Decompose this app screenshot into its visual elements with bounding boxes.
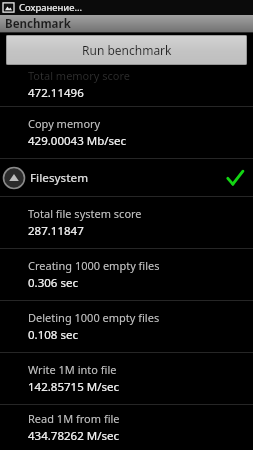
button[interactable]: Deleting 1000 empty files <box>0 301 253 352</box>
staticText: Write 1M into file <box>28 362 117 377</box>
staticText: Benchmark <box>5 16 71 32</box>
staticText: Deleting 1000 empty files <box>28 310 160 325</box>
button[interactable]: Collapse Filesystem group <box>0 159 253 196</box>
button[interactable]: Copy memory <box>0 107 253 158</box>
other: Collapse Filesystem group <box>2 166 26 190</box>
button[interactable]: Write 1M into file <box>0 353 253 404</box>
button[interactable]: Creating 1000 empty files <box>0 249 253 300</box>
other: Completed <box>226 169 244 187</box>
staticText: Total memory score <box>28 68 131 83</box>
staticText: Read 1M from file <box>28 411 120 426</box>
button[interactable]: Run benchmark <box>6 35 247 65</box>
staticText: 429.00043 Mb/sec <box>28 133 126 149</box>
staticText: Total file system score <box>28 206 142 221</box>
button[interactable]: Total memory score <box>0 67 253 106</box>
other: Saving image notification <box>3 2 14 13</box>
staticText: 0.306 sec <box>28 275 78 291</box>
staticText: 287.11847 <box>28 223 84 239</box>
staticText: Сохранение... <box>19 1 83 14</box>
staticText: 142.85715 M/sec <box>28 379 119 395</box>
staticText: 434.78262 M/sec <box>28 428 119 444</box>
staticText: Run benchmark <box>82 42 172 58</box>
staticText: Creating 1000 empty files <box>28 258 160 273</box>
staticText: Filesystem <box>30 170 89 186</box>
staticText: 0.108 sec <box>28 327 78 343</box>
staticText: Copy memory <box>28 116 101 131</box>
staticText: 472.11496 <box>28 85 84 101</box>
button[interactable]: Total file system score <box>0 197 253 248</box>
button[interactable]: Read 1M from file <box>0 405 253 450</box>
